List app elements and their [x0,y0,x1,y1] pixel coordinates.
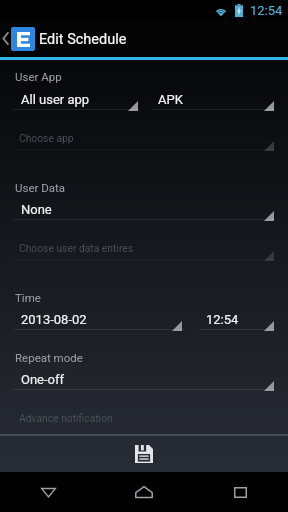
button[interactable]: All user app [21,92,90,107]
button[interactable]: One-off [21,372,65,387]
button[interactable]: Save [121,436,167,472]
staticText: User Data [15,181,66,194]
button[interactable]: 2013-08-02 [21,312,87,327]
staticText: 12:54 [250,3,283,18]
button[interactable]: Home [96,472,192,512]
button[interactable]: 12:54 [206,312,239,327]
staticText: Time [15,291,41,304]
staticText: Repeat mode [15,351,83,364]
button[interactable]: Choose app [19,132,74,144]
staticText: User App [15,70,62,83]
button[interactable]: Advance notification [19,412,113,424]
button[interactable]: None [21,202,52,217]
button[interactable]: APK [158,92,183,107]
button[interactable]: Choose user data entires [19,242,134,254]
button[interactable]: Recents [192,472,288,512]
button[interactable]: Navigate up [0,20,37,57]
button[interactable]: Back [0,472,96,512]
staticText: Edit Schedule [39,31,127,48]
